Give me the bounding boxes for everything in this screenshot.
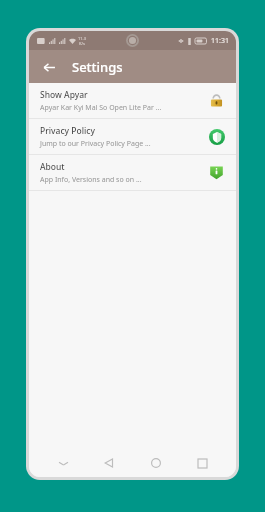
staticText: Privacy Policy: [40, 125, 95, 137]
staticText: Show Apyar: [40, 89, 88, 101]
button[interactable]: Hide keyboard: [50, 450, 76, 476]
staticText: K/s: [79, 41, 85, 46]
staticText: About: [40, 161, 65, 173]
button[interactable]: About: [29, 155, 236, 190]
button[interactable]: Back: [36, 54, 62, 80]
button[interactable]: Show Apyar: [29, 83, 236, 118]
staticText: Apyar Kar Kyi Mal So Open Lite Par ...: [40, 103, 162, 113]
button[interactable]: Back: [96, 450, 122, 476]
staticText: 11.3: [78, 36, 86, 41]
staticText: Settings: [72, 58, 123, 76]
staticText: 11:31: [211, 36, 229, 46]
button[interactable]: Privacy Policy: [29, 119, 236, 154]
staticText: Jump to our Privacy Policy Page ...: [40, 139, 151, 149]
button[interactable]: Recent apps: [189, 450, 215, 476]
staticText: App Info, Versions and so on ...: [40, 175, 142, 185]
button[interactable]: Home: [143, 450, 169, 476]
